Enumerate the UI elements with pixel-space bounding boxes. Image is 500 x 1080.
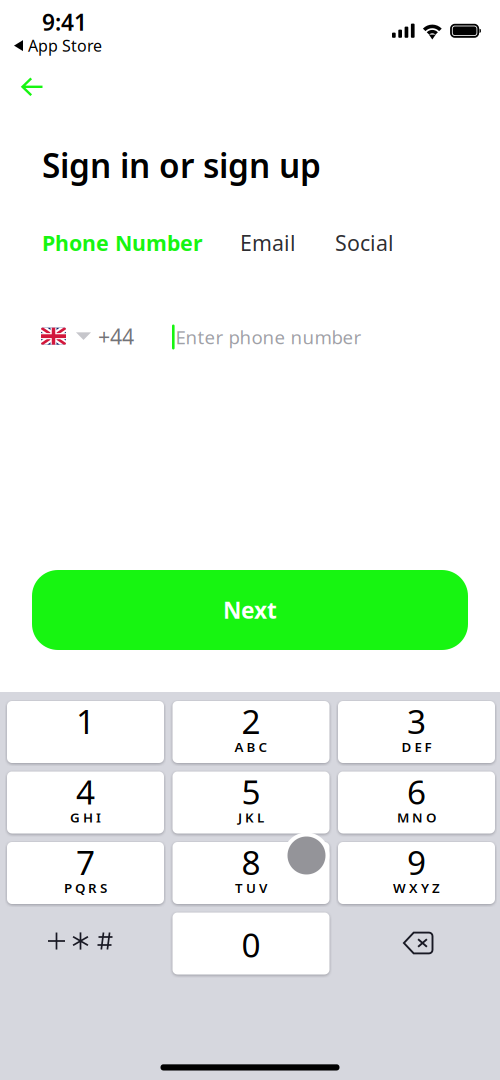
staticText: +44 [98,322,134,350]
staticText: 5 [241,769,260,814]
button[interactable]: 5 [172,771,329,833]
staticText: 4 [76,769,95,814]
button[interactable]: Next [32,570,468,650]
button[interactable]: 1 [7,701,164,763]
staticText: 6 [407,769,426,814]
staticText: T U V [235,879,267,897]
staticText: Phone Number [42,228,203,257]
button[interactable]: Enter phone number [172,318,462,356]
staticText: Social [335,228,394,257]
staticText: Sign in or sign up [42,143,321,187]
staticText: 2 [241,699,260,743]
staticText: Next [223,595,277,625]
staticText: P Q R S [64,879,107,897]
staticText: 9:41 [42,7,87,37]
staticText: W X Y Z [393,879,440,897]
staticText: Email [240,228,296,257]
button[interactable]: 9 [338,842,495,904]
staticText: 3 [407,699,426,743]
button[interactable]: Phone Number [42,228,203,257]
button[interactable]: 7 [7,842,164,904]
button[interactable]: Symbols [7,912,164,974]
button[interactable]: 8 [172,842,329,904]
button[interactable]: Back [0,0,44,97]
staticText: 1 [76,699,95,743]
staticText: App Store [28,35,102,56]
staticText: G H I [70,808,101,826]
staticText: 9 [407,840,426,884]
staticText: Enter phone number [176,325,362,349]
button[interactable]: App Store [14,35,102,56]
button[interactable]: Delete [338,912,495,974]
button[interactable]: 2 [172,701,329,763]
button[interactable]: 3 [338,701,495,763]
button[interactable]: Country code [41,316,134,356]
button[interactable]: 0 [172,912,329,974]
staticText: M N O [397,808,436,826]
staticText: J K L [238,808,264,826]
staticText: D E F [401,738,431,756]
button[interactable]: Social [296,228,394,257]
button[interactable]: 4 [7,771,164,833]
staticText: 8 [241,840,260,884]
button[interactable]: 6 [338,771,495,833]
staticText: A B C [234,738,267,756]
button[interactable]: Email [203,228,296,257]
staticText: 0 [241,922,260,967]
staticText: 7 [76,840,95,884]
